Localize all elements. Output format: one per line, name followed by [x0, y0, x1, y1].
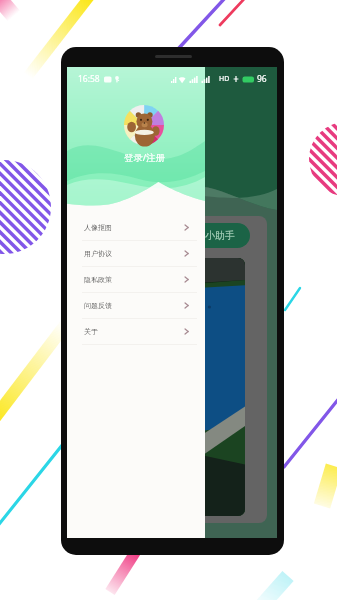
staticText: 16:58 [78, 73, 100, 85]
button[interactable]: 关于 [67, 319, 205, 344]
staticText: 96 [257, 73, 267, 85]
staticText: 人像抠图 [84, 223, 112, 232]
staticText: HD [219, 74, 230, 84]
staticText: 问题反馈 [84, 301, 112, 310]
staticText: 小助手 [205, 229, 235, 242]
button[interactable]: 用户协议 [67, 241, 205, 266]
button[interactable]: 人像抠图 [67, 215, 205, 240]
button[interactable] [67, 216, 267, 523]
button[interactable]: 隐私政策 [67, 267, 205, 292]
staticText: 关于 [84, 327, 98, 336]
button[interactable]: 小助手 [190, 223, 250, 248]
staticText: 用户协议 [84, 249, 112, 258]
button[interactable]: 问题反馈 [67, 293, 205, 318]
staticText: 隐私政策 [84, 275, 112, 284]
staticText: 登录/注册 [124, 151, 166, 164]
